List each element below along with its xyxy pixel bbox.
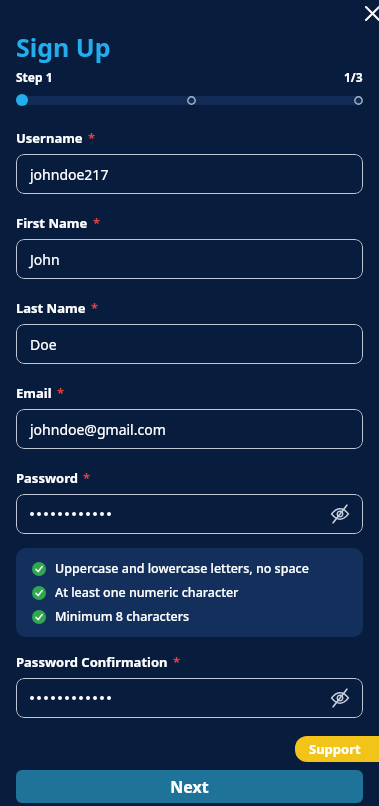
staticText: * — [93, 214, 101, 232]
staticText: Next — [170, 776, 209, 798]
staticText: * — [173, 653, 181, 671]
staticText: Uppercase and lowercase letters, no spac… — [55, 560, 309, 577]
button[interactable]: Doe — [16, 324, 363, 364]
staticText: Username — [16, 129, 83, 147]
staticText: Password — [16, 469, 78, 487]
staticText: Step 1 — [16, 69, 53, 85]
staticText: Minimum 8 characters — [55, 608, 190, 625]
staticText: * — [57, 384, 65, 402]
staticText: * — [83, 469, 91, 487]
staticText: At least one numeric character — [55, 584, 239, 601]
staticText: Support — [309, 740, 361, 758]
staticText: * — [88, 129, 96, 147]
button[interactable]: Support — [295, 736, 379, 762]
staticText: * — [91, 299, 99, 317]
button[interactable]: Next — [16, 770, 363, 803]
button[interactable]: johndoe217 — [16, 154, 363, 194]
staticText: John — [30, 250, 60, 269]
staticText: Doe — [30, 335, 57, 354]
button[interactable]: johndoe@gmail.com — [16, 409, 363, 449]
staticText: 1/3 — [344, 69, 363, 85]
button[interactable]: Show password — [329, 687, 351, 709]
button[interactable]: Show password — [16, 678, 363, 718]
staticText: johndoe217 — [30, 165, 109, 184]
staticText: Sign Up — [16, 30, 111, 64]
button[interactable]: Show password — [16, 494, 363, 534]
button[interactable]: Close — [361, 2, 379, 24]
button[interactable]: Show password — [329, 503, 351, 525]
button[interactable]: John — [16, 239, 363, 279]
staticText: First Name — [16, 214, 88, 232]
staticText: Password Confirmation — [16, 653, 168, 671]
staticText: Email — [16, 384, 52, 402]
staticText: Last Name — [16, 299, 86, 317]
staticText: johndoe@gmail.com — [30, 420, 166, 439]
